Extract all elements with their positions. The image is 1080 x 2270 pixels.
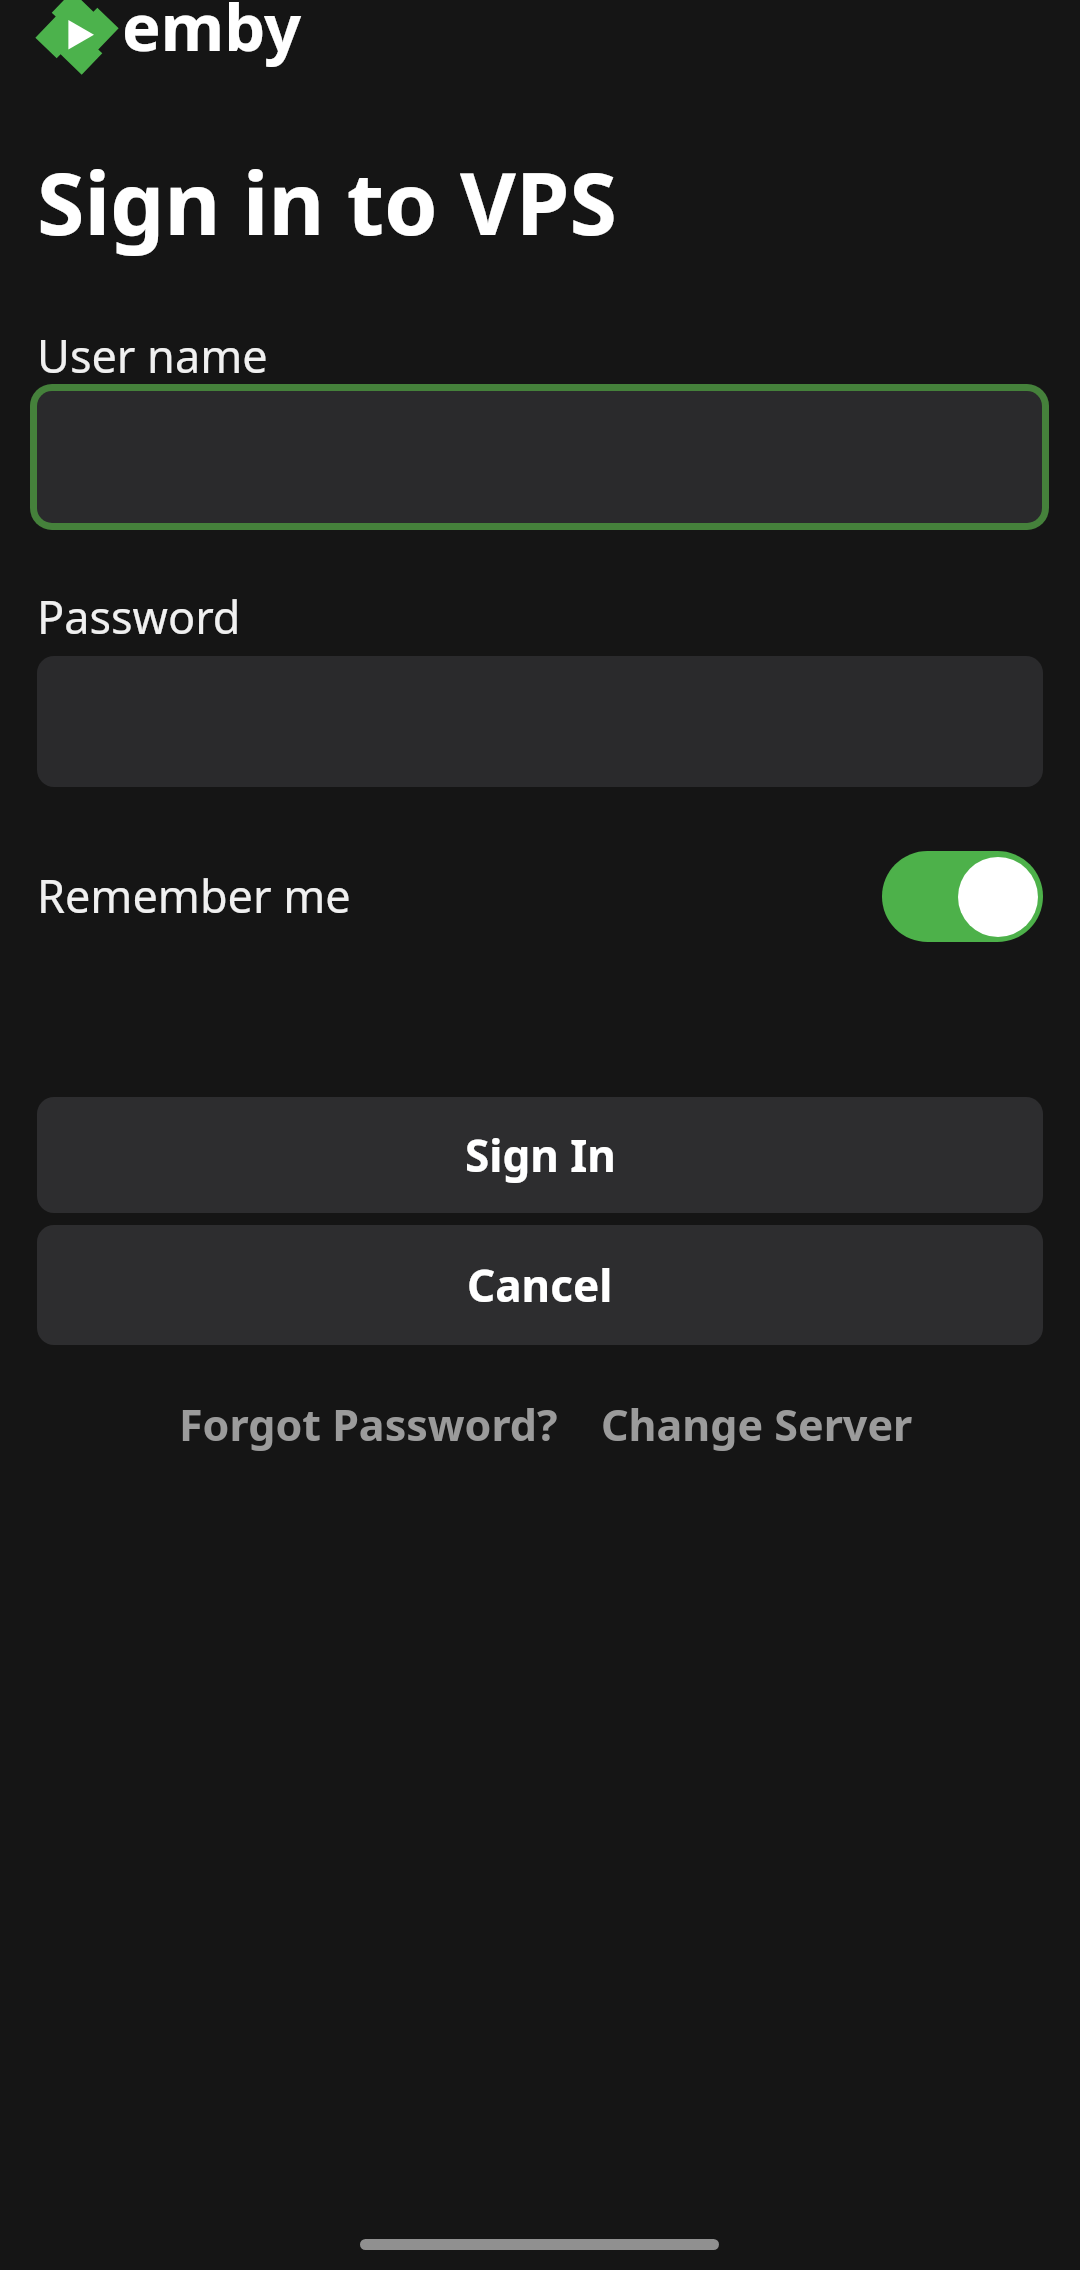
button[interactable] [882, 851, 1043, 942]
staticText: emby [122, 0, 302, 71]
staticText: Cancel [467, 1255, 613, 1315]
staticText: Sign In [465, 1125, 616, 1185]
staticText: User name [37, 325, 268, 386]
button[interactable] [30, 384, 1049, 530]
button[interactable]: Forgot Password? [179, 1395, 558, 1454]
button[interactable]: Change Server [601, 1395, 913, 1454]
staticText: Password [37, 586, 241, 647]
staticText: Remember me [37, 865, 351, 926]
button[interactable]: Cancel [37, 1225, 1043, 1345]
staticText: Sign in to VPS [37, 143, 617, 260]
button[interactable]: Sign In [37, 1097, 1043, 1213]
